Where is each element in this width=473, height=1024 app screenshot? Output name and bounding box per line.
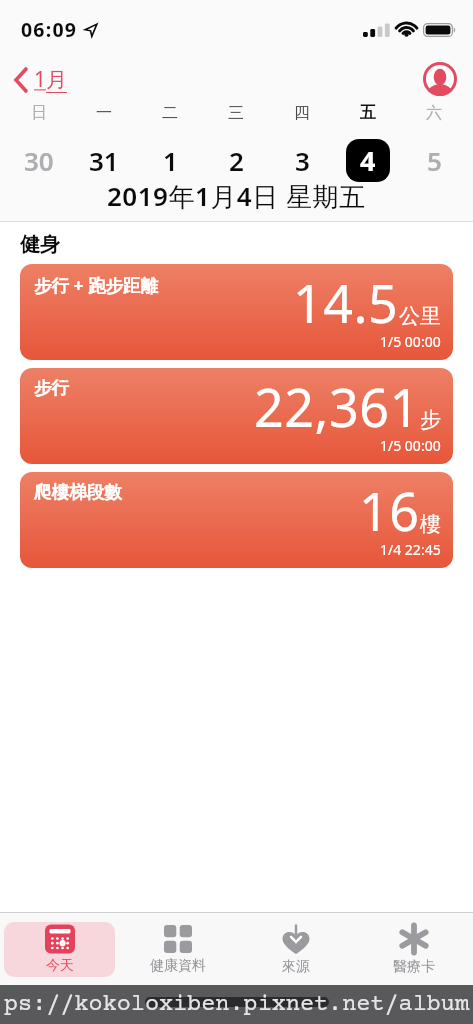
button[interactable]: 30	[24, 143, 54, 178]
staticText: 六	[426, 103, 442, 123]
staticText: 步行	[34, 377, 69, 399]
staticText: 來源	[282, 958, 310, 976]
staticText: 1月	[34, 65, 68, 94]
staticText: 16	[359, 475, 420, 546]
button[interactable]: 今天	[4, 922, 115, 977]
staticText: 樓	[420, 511, 441, 537]
staticText: 二	[162, 103, 178, 123]
staticText: 醫療卡	[393, 958, 435, 976]
staticText: 健身	[20, 232, 60, 257]
staticText: 1/5 00:00	[380, 332, 441, 351]
staticText: 14.5	[293, 267, 399, 338]
staticText: ps://kokoloxiben.pixnet.net/album	[4, 992, 469, 1018]
staticText: 1/4 22:45	[380, 540, 441, 559]
staticText: 06:09	[21, 16, 78, 43]
staticText: 公里	[399, 303, 441, 329]
staticText: 今天	[46, 957, 74, 975]
button[interactable]: 4	[346, 139, 390, 182]
button[interactable]: 1	[163, 143, 178, 178]
button[interactable]: 健康資料	[119, 913, 237, 985]
button[interactable]: 2	[229, 143, 244, 178]
button[interactable]: 爬樓梯段數	[20, 472, 453, 568]
button[interactable]: 步行 + 跑步距離	[20, 264, 453, 360]
button[interactable]: 醫療卡	[355, 913, 473, 985]
staticText: 三	[228, 103, 244, 123]
button[interactable]: 3	[295, 143, 310, 178]
staticText: 五	[360, 103, 376, 123]
staticText: 四	[294, 103, 310, 123]
staticText: 2019年1月4日 星期五	[107, 178, 366, 214]
staticText: 一	[96, 103, 112, 123]
staticText: 步行 + 跑步距離	[34, 273, 159, 297]
button[interactable]: 來源	[237, 913, 355, 985]
staticText: 步	[420, 407, 441, 433]
staticText: 日	[31, 103, 47, 123]
button[interactable]: 1月	[14, 65, 68, 94]
staticText: 22,361	[254, 371, 420, 442]
button[interactable]: 5	[427, 143, 442, 178]
button[interactable]	[423, 62, 457, 96]
staticText: 4	[360, 142, 376, 179]
staticText: 爬樓梯段數	[34, 481, 122, 503]
button[interactable]: 31	[89, 143, 119, 178]
button[interactable]: 步行	[20, 368, 453, 464]
staticText: 1/5 00:00	[380, 436, 441, 455]
staticText: 健康資料	[150, 957, 206, 975]
